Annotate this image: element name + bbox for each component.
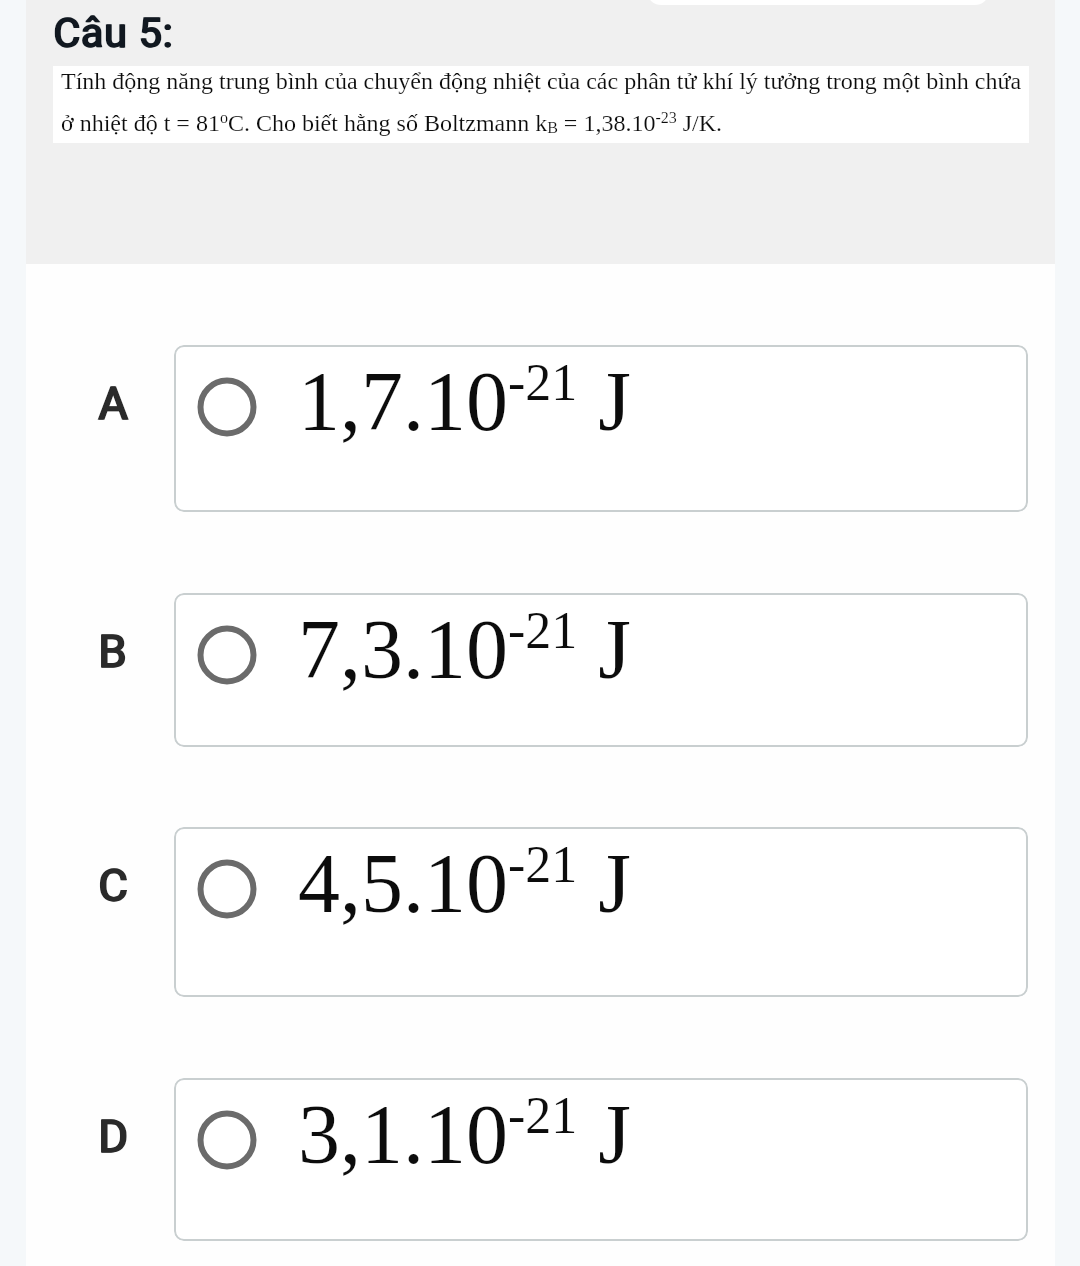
- staticText: Câu 5:: [53, 9, 174, 57]
- staticText: A: [99, 377, 129, 430]
- staticText: 4,5.10-21 J: [298, 836, 632, 930]
- staticText: B: [99, 625, 128, 678]
- staticText: C: [99, 859, 129, 912]
- staticText: Câu 5:: [54, 9, 175, 57]
- staticText: 7,3.10-21 J: [298, 602, 632, 696]
- staticText: D: [98, 1110, 128, 1163]
- staticText: B: [98, 625, 127, 678]
- staticText: 1,7.10-21 J: [298, 354, 632, 448]
- staticText: ở nhiệt độ t = 81oC. Cho biết hằng số Bo…: [61, 109, 723, 136]
- staticText: 3,1.10-21 J: [298, 1087, 632, 1181]
- button[interactable]: Đáp án B: [174, 593, 1028, 747]
- button[interactable]: Đáp án C: [174, 827, 1028, 997]
- button[interactable]: Đáp án D: [174, 1078, 1028, 1241]
- staticText: Tính động năng trung bình của chuyển độn…: [61, 68, 1022, 95]
- staticText: C: [98, 859, 128, 912]
- button[interactable]: Đáp án A: [174, 345, 1028, 512]
- staticText: A: [98, 377, 128, 430]
- staticText: D: [99, 1110, 129, 1163]
